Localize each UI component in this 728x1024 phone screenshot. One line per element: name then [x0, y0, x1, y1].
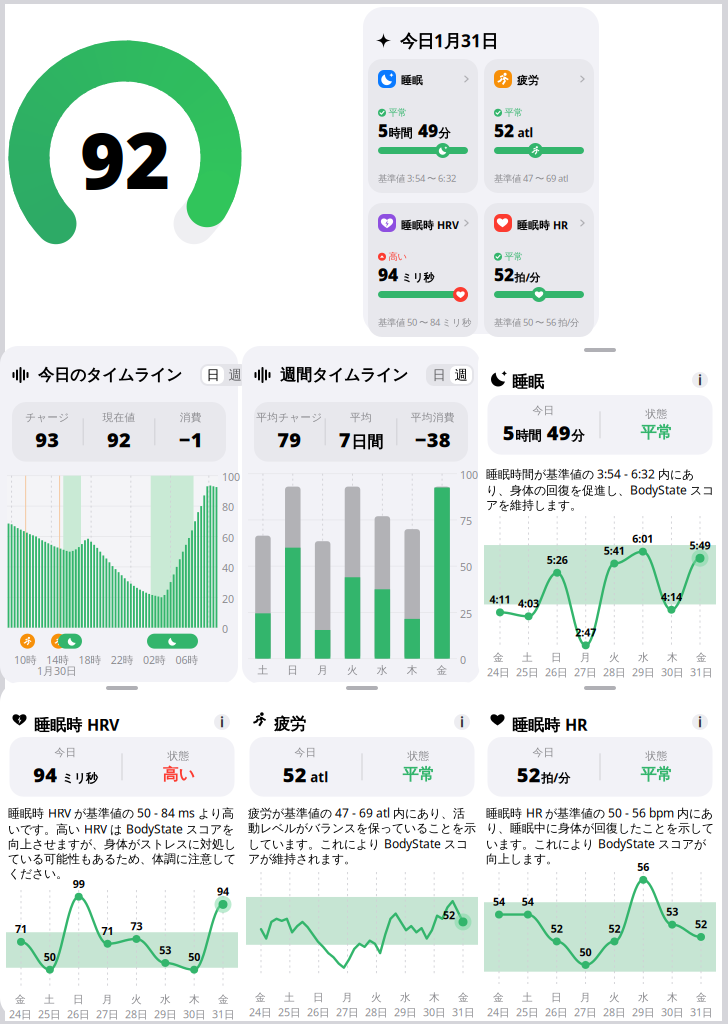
staticText: 金: [696, 991, 707, 1004]
staticText: 木: [407, 664, 418, 677]
staticText: 日: [313, 991, 324, 1004]
staticText: 25日: [516, 1005, 539, 1019]
staticText: 24日: [249, 1005, 272, 1019]
staticText: 30日: [183, 1007, 206, 1021]
button[interactable]: 日: [202, 366, 224, 384]
staticText: 7: [339, 426, 351, 453]
staticText: 火: [609, 651, 620, 664]
staticText: 平常: [504, 251, 522, 262]
staticText: 状態: [645, 407, 667, 421]
staticText: 52: [283, 761, 307, 788]
staticText: 今日1月31日: [400, 29, 498, 52]
staticText: 水: [377, 664, 388, 677]
button[interactable]: 睡眠時 HRV: [368, 203, 478, 337]
staticText: 5:41: [604, 543, 625, 558]
staticText: 睡眠時 HR が基準値の 50 - 56 bpm 内にあり、睡眠中に身体が回復し…: [486, 805, 714, 866]
staticText: 睡眠: [401, 74, 423, 87]
staticText: 31日: [452, 1005, 475, 1019]
staticText: 94: [33, 761, 57, 788]
staticText: 29日: [394, 1005, 417, 1019]
staticText: チャージ: [25, 411, 69, 424]
staticText: 水: [638, 991, 649, 1004]
staticText: 80: [222, 500, 234, 514]
staticText: 金: [255, 991, 266, 1004]
button[interactable]: 週: [450, 366, 472, 384]
staticText: 基準値 50 〜 56 拍/分: [494, 316, 579, 328]
staticText: 平常: [640, 765, 672, 784]
staticText: 14時: [46, 653, 69, 667]
staticText: 平均消費: [411, 411, 455, 424]
staticText: 疲労: [517, 74, 539, 87]
button[interactable]: 詳細情報: [454, 714, 470, 730]
staticText: 今日: [54, 746, 76, 759]
button[interactable]: 詳細情報: [692, 372, 708, 388]
staticText: 31日: [690, 1005, 713, 1019]
staticText: 火: [347, 664, 358, 677]
staticText: 49: [413, 119, 438, 142]
staticText: 睡眠時 HRV: [34, 714, 119, 735]
staticText: 27日: [336, 1005, 359, 1019]
staticText: 週: [454, 367, 467, 383]
staticText: 26日: [307, 1005, 330, 1019]
staticText: 29日: [632, 1005, 655, 1019]
staticText: 状態: [167, 749, 189, 763]
staticText: 10時: [14, 653, 37, 667]
staticText: 平常: [388, 107, 406, 118]
staticText: 54: [522, 895, 534, 909]
staticText: 睡眠時 HRV: [401, 218, 459, 232]
staticText: 50: [580, 945, 592, 959]
button[interactable]: 睡眠時 HR: [484, 203, 594, 337]
staticText: 50: [188, 950, 200, 964]
staticText: 30日: [661, 1005, 684, 1019]
staticText: 52: [695, 917, 707, 931]
staticText: 100: [460, 468, 478, 482]
staticText: 5:26: [547, 553, 568, 567]
staticText: 木: [667, 991, 678, 1004]
staticText: 94: [217, 884, 229, 899]
staticText: 月: [102, 993, 113, 1006]
staticText: 4:14: [661, 590, 682, 604]
staticText: 高い: [388, 251, 407, 262]
staticText: 消費: [180, 411, 202, 424]
button[interactable]: 疲労: [484, 59, 594, 193]
staticText: 25日: [38, 1007, 61, 1021]
staticText: 54: [493, 895, 505, 909]
staticText: 時間: [515, 427, 541, 444]
staticText: i: [698, 713, 702, 731]
staticText: 月: [317, 664, 328, 677]
button[interactable]: 詳細情報: [692, 714, 708, 730]
button[interactable]: 週: [224, 366, 246, 384]
staticText: 92: [107, 426, 131, 453]
staticText: 5: [503, 419, 515, 446]
staticText: 睡眠時 HRV が基準値の 50 - 84 ms より高いです。高い HRV は…: [8, 805, 236, 881]
staticText: 31日: [690, 665, 713, 679]
staticText: 4:11: [489, 592, 510, 607]
staticText: 日: [206, 367, 219, 383]
staticText: 今日: [294, 746, 316, 759]
staticText: 金: [218, 993, 229, 1006]
staticText: atl: [307, 768, 328, 786]
button[interactable]: 睡眠: [368, 59, 478, 193]
staticText: 53: [666, 905, 678, 919]
staticText: 30日: [423, 1005, 446, 1019]
staticText: 28日: [125, 1007, 148, 1021]
staticText: 26日: [67, 1007, 90, 1021]
staticText: 日間: [351, 432, 383, 452]
button[interactable]: 詳細情報: [214, 714, 230, 730]
staticText: 水: [400, 991, 411, 1004]
staticText: 分: [571, 427, 584, 444]
button[interactable]: 日: [428, 366, 450, 384]
staticText: −38: [415, 426, 451, 453]
staticText: ミリ秒: [58, 771, 98, 785]
staticText: 金: [15, 993, 26, 1006]
staticText: 日: [287, 664, 298, 677]
staticText: 土: [44, 993, 55, 1006]
staticText: 40: [222, 561, 234, 575]
staticText: 睡眠時 HR: [512, 714, 587, 735]
staticText: 月: [342, 991, 353, 1004]
staticText: atl: [514, 125, 533, 140]
staticText: 06時: [175, 653, 198, 667]
staticText: 基準値 3:54 〜 6:32: [378, 172, 456, 184]
staticText: 4:03: [518, 596, 539, 610]
staticText: 金: [696, 651, 707, 664]
